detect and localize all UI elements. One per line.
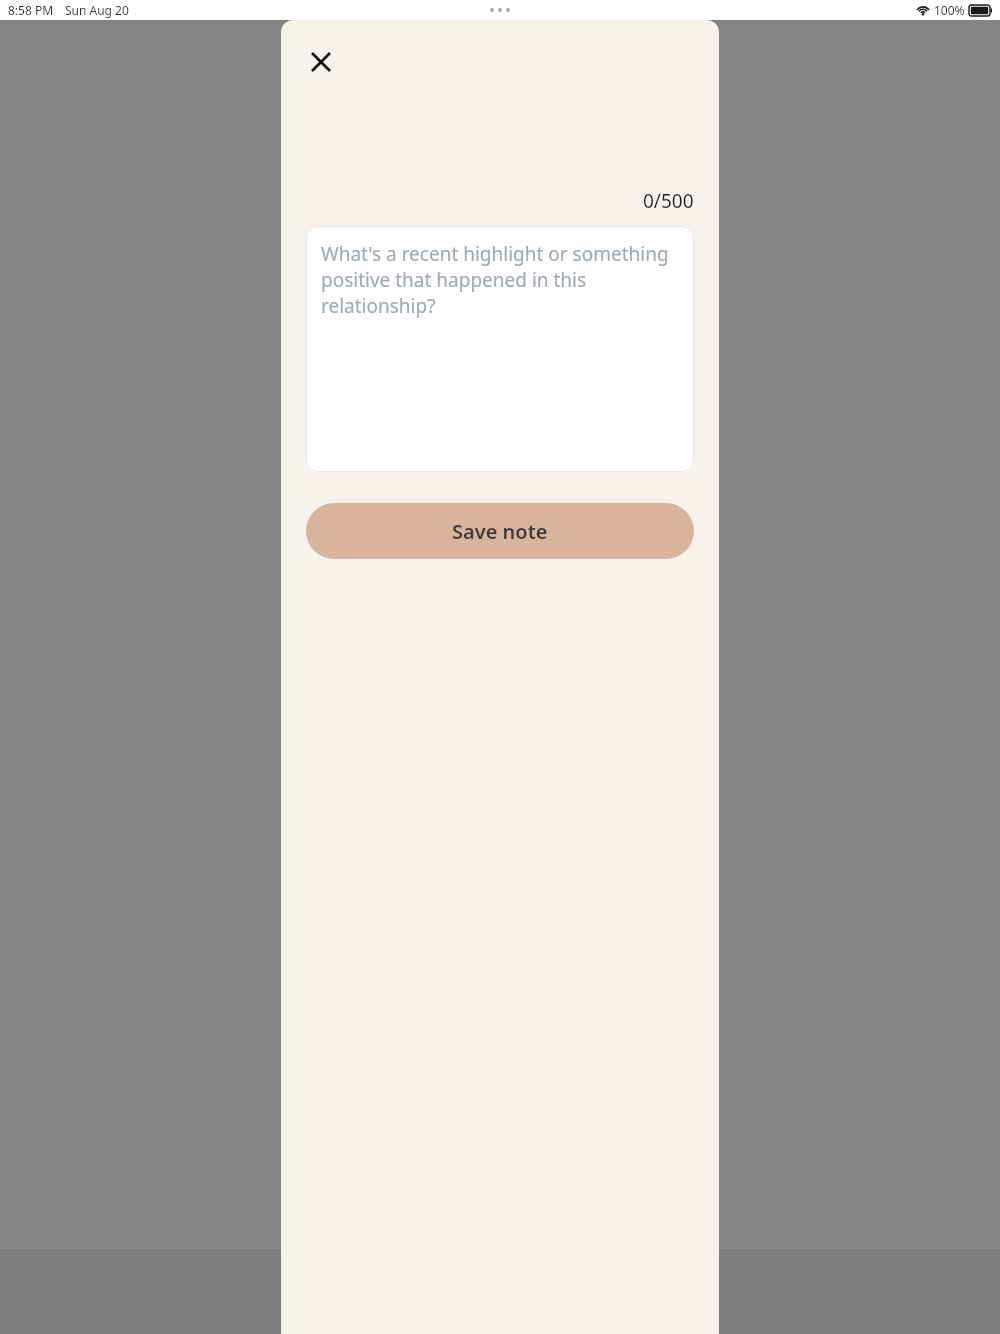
staticText: 100% [934,2,965,18]
staticText: 0/500 [643,188,694,214]
staticText: Sun Aug 20 [65,2,129,18]
staticText: Save note [452,518,548,545]
staticText: 8:58 PM [8,2,54,18]
button[interactable]: What's a recent highlight or something p… [306,226,694,472]
button[interactable]: Close [293,34,349,90]
button[interactable]: Save note [306,503,694,559]
staticText: What's a recent highlight or something p… [321,241,679,319]
